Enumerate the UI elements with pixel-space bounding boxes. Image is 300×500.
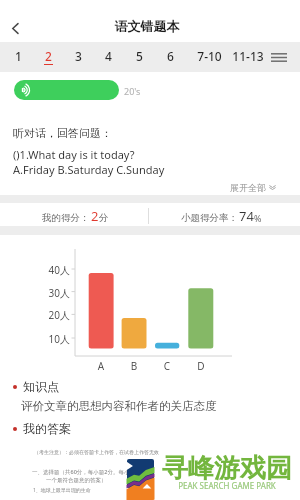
button[interactable]: 11-13 — [228, 42, 268, 72]
staticText: 我的答案 — [23, 421, 71, 436]
staticText: （考生注意）：必须在答题卡上作答，在试卷上作答无效 — [34, 449, 159, 455]
staticText: 1、地球上最早出现的生命 — [33, 487, 91, 494]
staticText: 语文错题本 — [110, 18, 184, 34]
staticText: 分 — [99, 212, 109, 224]
button[interactable]: Back — [3, 14, 27, 42]
staticText: 2 — [91, 207, 99, 225]
staticText: 20's — [124, 85, 141, 97]
button[interactable]: Play audio — [14, 80, 119, 100]
button[interactable]: 5 — [125, 42, 153, 72]
staticText: 40人 — [40, 263, 70, 277]
staticText: 听对话，回答问题： — [13, 126, 112, 140]
staticText: A — [91, 359, 111, 373]
staticText: 30人 — [40, 286, 70, 300]
staticText: 20人 — [40, 308, 70, 322]
staticText: 4 — [105, 48, 112, 64]
staticText: % — [254, 212, 262, 224]
staticText: 5 — [136, 48, 143, 64]
staticText: 1 — [15, 48, 22, 64]
staticText: 10人 — [40, 332, 70, 346]
staticText: 2 — [45, 48, 52, 64]
button[interactable]: 3 — [64, 42, 92, 72]
staticText: 6 — [167, 48, 174, 64]
staticText: 7-10 — [197, 48, 222, 64]
staticText: 展开全部 — [230, 182, 266, 193]
staticText: 小题得分率： — [181, 212, 238, 224]
staticText: D — [191, 359, 211, 373]
button[interactable]: 展开全部 — [226, 179, 280, 196]
staticText: 一、选择题（共60分，每小题2分。每小题只有 — [32, 468, 146, 476]
button[interactable]: 我的答案 — [13, 421, 71, 436]
staticText: 一个最符合题意的答案） — [46, 477, 107, 484]
button[interactable]: 4 — [94, 42, 122, 72]
staticText: 知识点 — [23, 379, 59, 394]
button[interactable]: 6 — [156, 42, 184, 72]
button[interactable]: 7-10 — [189, 42, 229, 72]
button[interactable]: Menu — [266, 45, 292, 69]
staticText: 寻峰游戏园 — [157, 452, 297, 485]
staticText: C — [157, 359, 177, 373]
staticText: 11-13 — [232, 48, 264, 64]
staticText: ()1.What day is it today? — [13, 147, 135, 162]
staticText: 评价文章的思想内容和作者的关店态度 — [21, 399, 217, 413]
button[interactable]: 知识点 — [13, 379, 59, 394]
staticText: A.Friday B.Saturday C.Sunday — [13, 162, 165, 177]
staticText: 3 — [75, 48, 82, 64]
staticText: 我的得分： — [42, 212, 90, 224]
staticText: PEAK SEARCH GAME PARK — [157, 480, 297, 491]
button[interactable]: 2 — [34, 42, 62, 72]
staticText: 74 — [239, 207, 254, 225]
staticText: B — [124, 359, 144, 373]
button[interactable]: 1 — [4, 42, 32, 72]
